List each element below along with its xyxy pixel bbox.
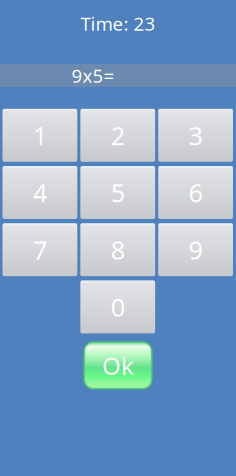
staticText: 2 <box>111 118 125 152</box>
staticText: 5 <box>111 176 125 209</box>
staticText: 8 <box>111 233 125 266</box>
staticText: 1 <box>33 118 47 152</box>
button[interactable]: 0 <box>80 280 155 333</box>
staticText: Time: 23 <box>80 11 155 36</box>
staticText: 9x5= <box>71 63 114 88</box>
button[interactable]: 5 <box>80 166 155 219</box>
staticText: 7 <box>33 233 47 266</box>
button[interactable]: 6 <box>158 166 233 219</box>
button[interactable]: 1 <box>2 109 77 162</box>
staticText: 4 <box>33 176 47 209</box>
button[interactable]: 2 <box>80 109 155 162</box>
staticText: 0 <box>111 290 125 324</box>
button[interactable]: 8 <box>80 223 155 276</box>
button[interactable]: 3 <box>158 109 233 162</box>
button[interactable]: Ok <box>83 341 152 389</box>
button[interactable]: 4 <box>2 166 77 219</box>
button[interactable]: 7 <box>2 223 77 276</box>
staticText: 6 <box>189 176 203 209</box>
staticText: Ok <box>102 349 134 381</box>
staticText: 3 <box>189 118 203 152</box>
staticText: 9 <box>189 233 203 266</box>
button[interactable]: 9 <box>158 223 233 276</box>
